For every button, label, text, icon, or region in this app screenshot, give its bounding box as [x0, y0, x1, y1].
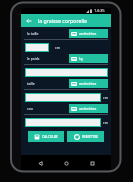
staticText: cm	[103, 120, 108, 125]
button[interactable]: centimètres	[69, 104, 108, 113]
button[interactable]: Back	[33, 156, 47, 170]
staticText: cm	[55, 45, 60, 50]
staticText: cou	[27, 106, 33, 111]
button[interactable]: Recents	[85, 156, 99, 170]
button[interactable]: CALCULER	[28, 131, 64, 142]
staticText: le poids	[27, 56, 40, 61]
staticText: la taille	[27, 31, 39, 36]
staticText: la graisse corporelle	[38, 17, 87, 24]
button[interactable]: kg	[69, 54, 108, 63]
staticText: kg	[79, 57, 83, 61]
staticText: centimètres	[79, 107, 97, 111]
staticText: centimètres	[79, 32, 97, 36]
button[interactable]: Home	[59, 156, 73, 170]
staticText: CALCULER	[42, 135, 58, 139]
staticText: centimètres	[79, 82, 97, 86]
staticText: cm	[103, 95, 108, 100]
button[interactable]: REMETTRE	[67, 131, 104, 142]
button[interactable]: centimètres	[69, 79, 108, 88]
staticText: taille	[27, 81, 35, 86]
button[interactable]: centimètres	[69, 29, 108, 38]
button[interactable]: Back	[21, 14, 36, 27]
staticText: REMETTRE	[82, 135, 98, 139]
staticText: 14:35	[94, 8, 105, 14]
